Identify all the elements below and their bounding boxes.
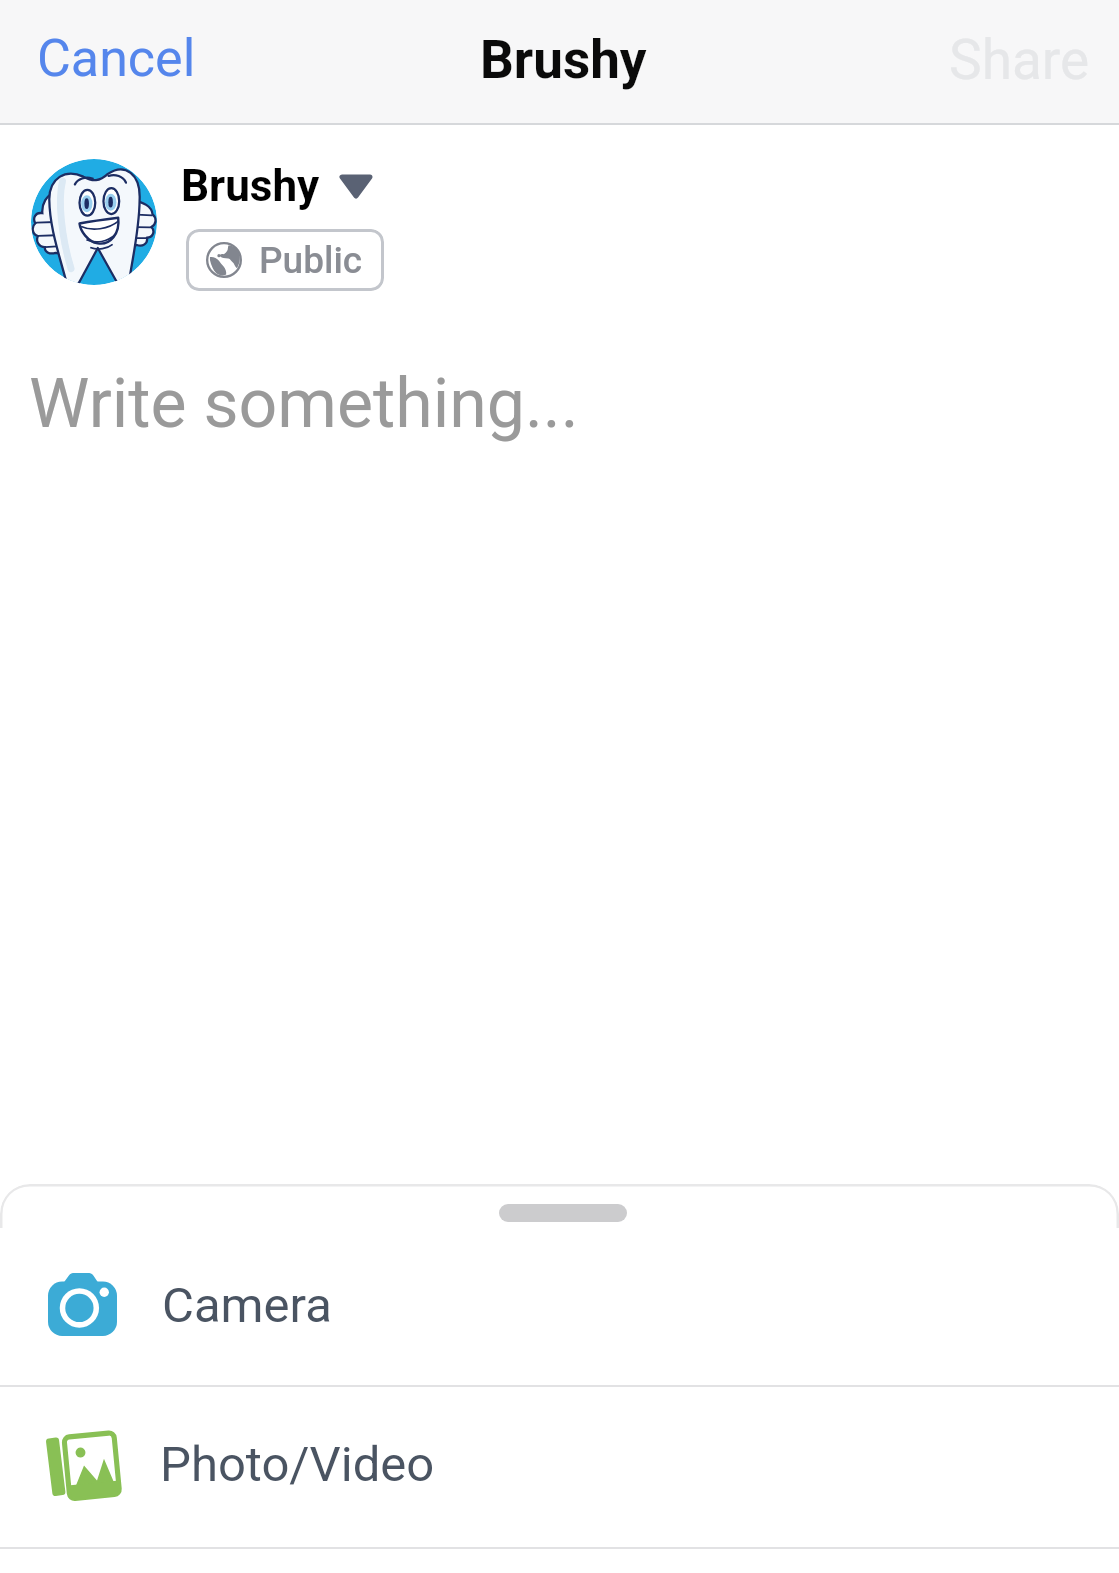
staticText: Camera — [162, 1277, 332, 1334]
staticText: Public — [259, 239, 363, 282]
button[interactable]: Share — [931, 0, 1108, 121]
staticText: Brushy — [181, 160, 320, 212]
staticText: Cancel — [37, 28, 196, 89]
staticText: Photo/Video — [160, 1436, 435, 1493]
staticText: Write something... — [29, 364, 579, 444]
button[interactable]: Profile picture — [31, 159, 157, 285]
staticText: Brushy — [480, 29, 647, 91]
button[interactable]: Change audience — [342, 177, 370, 196]
button[interactable]: Photo/Video — [0, 1387, 1119, 1547]
button[interactable]: Cancel — [17, 0, 216, 120]
button[interactable]: Brushy — [181, 160, 320, 212]
button[interactable]: Camera — [0, 1231, 1119, 1385]
button[interactable]: Public — [186, 229, 384, 291]
button[interactable]: Write something... — [29, 364, 579, 444]
staticText: Share — [949, 28, 1090, 92]
